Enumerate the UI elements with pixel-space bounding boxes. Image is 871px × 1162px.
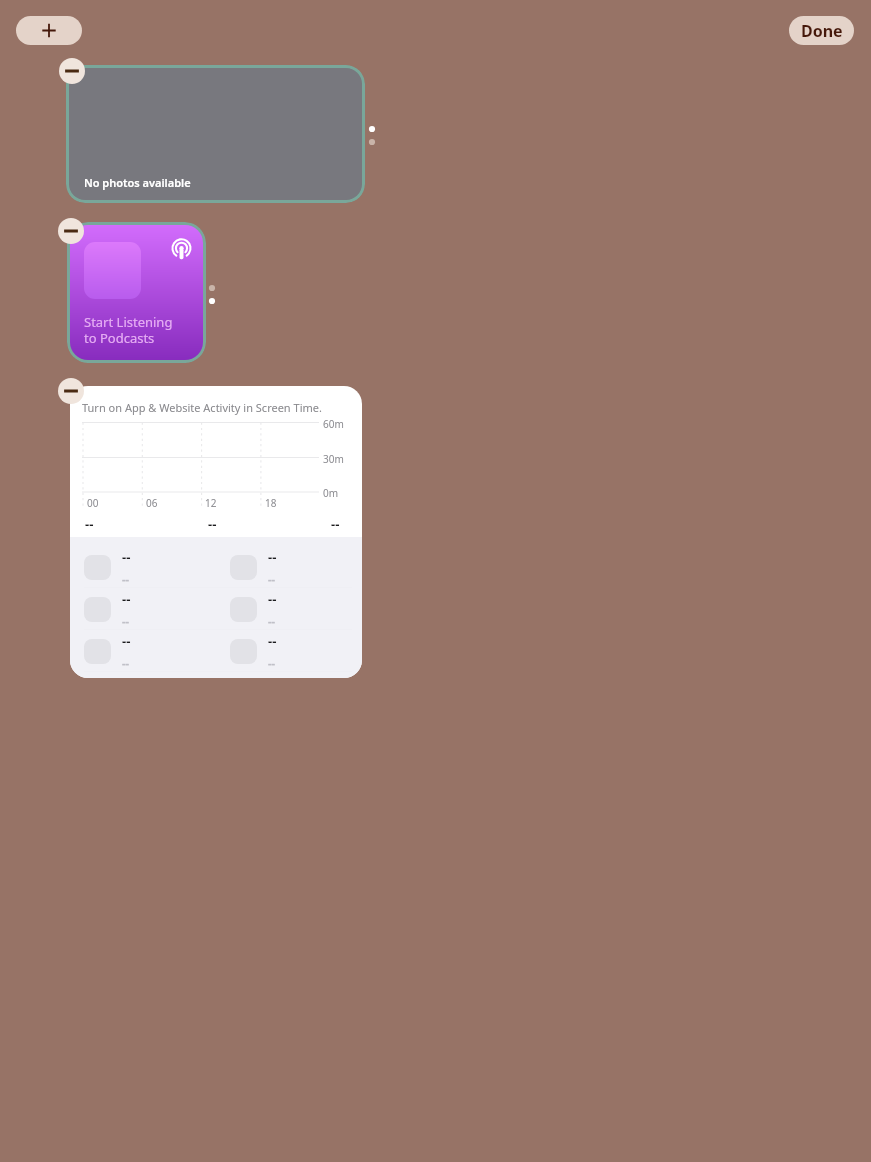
staticText: --: [268, 655, 276, 670]
staticText: --: [122, 632, 131, 650]
staticText: 00: [87, 496, 99, 510]
staticText: --: [122, 590, 131, 608]
button[interactable]: Done: [789, 16, 854, 45]
staticText: --: [268, 613, 276, 628]
staticText: Turn on App & Website Activity in Screen…: [82, 400, 322, 415]
staticText: No photos available: [84, 175, 191, 190]
staticText: --: [85, 515, 94, 533]
button[interactable]: Turn on App & Website Activity in Screen…: [70, 386, 362, 678]
staticText: --: [122, 655, 130, 670]
staticText: --: [208, 515, 217, 533]
button[interactable]: --: [70, 630, 216, 672]
staticText: Done: [801, 20, 843, 42]
staticText: --: [122, 613, 130, 628]
button[interactable]: Remove widget: [59, 58, 85, 84]
staticText: --: [331, 515, 340, 533]
button[interactable]: --: [216, 588, 362, 630]
staticText: 18: [265, 496, 277, 510]
staticText: --: [268, 632, 277, 650]
button[interactable]: Photos widget: [66, 65, 365, 203]
button[interactable]: --: [216, 546, 362, 588]
button[interactable]: --: [70, 546, 216, 588]
staticText: --: [268, 548, 277, 566]
button[interactable]: Remove widget: [58, 378, 84, 404]
button[interactable]: --: [70, 588, 216, 630]
button[interactable]: Remove widget: [58, 218, 84, 244]
staticText: --: [122, 571, 130, 586]
staticText: 30m: [323, 452, 344, 466]
button[interactable]: --: [216, 630, 362, 672]
staticText: 12: [205, 496, 217, 510]
staticText: 0m: [323, 486, 339, 500]
staticText: --: [122, 548, 131, 566]
button[interactable]: Add widget: [16, 16, 82, 45]
staticText: 60m: [323, 417, 344, 431]
button[interactable]: Start Listening to Podcasts: [67, 222, 206, 363]
staticText: Start Listening to Podcasts: [84, 313, 173, 347]
staticText: --: [268, 571, 276, 586]
staticText: --: [268, 590, 277, 608]
staticText: 06: [146, 496, 158, 510]
